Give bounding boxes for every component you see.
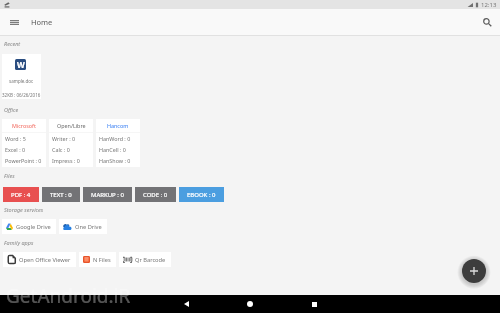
button[interactable]: EBOOK : 0	[179, 187, 224, 202]
staticText: 32KB : 06/26/2016	[2, 92, 41, 98]
staticText: Open/Libre	[57, 122, 86, 129]
staticText: Storage services	[4, 206, 44, 213]
button[interactable]: Back	[154, 295, 218, 313]
button[interactable]: Open Office Viewer	[3, 252, 76, 267]
staticText: CODE : 0	[143, 191, 168, 199]
button[interactable]: CODE : 0	[135, 187, 176, 202]
staticText: Writer : 0	[52, 135, 76, 142]
staticText: sample.doc	[9, 78, 34, 84]
staticText: 12:13	[481, 1, 497, 9]
staticText: HanCell : 0	[99, 146, 126, 153]
button[interactable]: MARKUP : 0	[83, 187, 132, 202]
staticText: Office	[4, 106, 19, 113]
staticText: HanShow : 0	[99, 157, 131, 164]
staticText: Microsoft	[12, 122, 36, 129]
staticText: PDF : 4	[11, 191, 31, 199]
button[interactable]: W	[2, 54, 41, 99]
button[interactable]: Home	[218, 295, 282, 313]
staticText: Hancom	[107, 122, 129, 129]
staticText: Excel : 0	[5, 146, 26, 153]
button[interactable]: One Drive	[59, 219, 107, 234]
button[interactable]: TEXT : 0	[42, 187, 80, 202]
button[interactable]: Microsoft	[2, 119, 46, 167]
staticText: Home	[31, 17, 53, 27]
staticText: MARKUP : 0	[91, 191, 124, 199]
button[interactable]: Qr Barcode	[119, 252, 171, 267]
button[interactable]: N Files	[79, 252, 116, 267]
staticText: PowerPoint : 0	[5, 157, 42, 164]
staticText: Files	[4, 172, 15, 179]
staticText: Open Office Viewer	[19, 256, 71, 264]
button[interactable]: PDF : 4	[3, 187, 39, 202]
staticText: EBOOK : 0	[187, 191, 216, 199]
staticText: Impress : 0	[52, 157, 80, 164]
button[interactable]: Open/Libre	[49, 119, 93, 167]
staticText: W	[17, 59, 25, 70]
staticText: Family apps	[4, 239, 34, 246]
button[interactable]: Google Drive	[2, 219, 56, 234]
staticText: Recent	[4, 40, 21, 47]
staticText: Word : 5	[5, 135, 26, 142]
staticText: Calc : 0	[52, 146, 70, 153]
staticText: Qr Barcode	[135, 256, 166, 264]
staticText: HanWord : 0	[99, 135, 131, 142]
staticText: GetAndroid.iR	[6, 283, 131, 309]
button[interactable]: Menu	[6, 14, 22, 30]
button[interactable]: Recents	[282, 295, 346, 313]
button[interactable]: Hancom	[96, 119, 140, 167]
button[interactable]: Search	[479, 14, 495, 30]
staticText: N Files	[93, 256, 111, 264]
staticText: Google Drive	[16, 223, 51, 231]
staticText: TEXT : 0	[50, 191, 72, 199]
button[interactable]: Add	[462, 259, 486, 283]
staticText: One Drive	[75, 223, 102, 231]
